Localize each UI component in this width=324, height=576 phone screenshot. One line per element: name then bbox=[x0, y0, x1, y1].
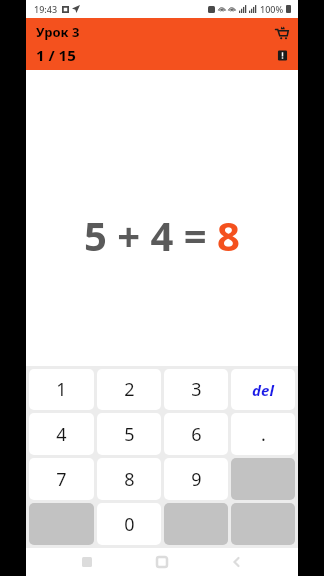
staticText: 8 bbox=[124, 467, 135, 492]
staticText: 4 bbox=[56, 422, 67, 447]
button[interactable]: Back bbox=[223, 548, 251, 576]
staticText: 1 bbox=[56, 377, 67, 402]
button[interactable]: del bbox=[231, 369, 295, 410]
button[interactable]: Info bbox=[272, 45, 292, 65]
button[interactable]: Shop bbox=[270, 21, 292, 43]
button[interactable] bbox=[231, 503, 295, 545]
staticText: del bbox=[252, 380, 274, 400]
button[interactable]: 0 bbox=[97, 503, 161, 545]
staticText: 0 bbox=[124, 512, 135, 537]
staticText: 7 bbox=[56, 467, 67, 492]
staticText: 9 bbox=[191, 467, 202, 492]
button[interactable]: 5 bbox=[97, 413, 161, 455]
button[interactable]: 9 bbox=[164, 458, 228, 500]
button[interactable]: Home bbox=[148, 548, 176, 576]
staticText: 5 + 4 = 8 bbox=[84, 208, 240, 262]
button[interactable] bbox=[164, 503, 228, 545]
button[interactable] bbox=[231, 458, 295, 500]
staticText: 2 bbox=[124, 377, 135, 402]
staticText: Урок 3 bbox=[36, 23, 80, 41]
button[interactable]: 1 bbox=[29, 369, 94, 410]
button[interactable]: . bbox=[231, 413, 295, 455]
staticText: 100% bbox=[260, 3, 284, 15]
staticText: 19:43 bbox=[34, 3, 58, 15]
button[interactable]: 6 bbox=[164, 413, 228, 455]
staticText: 6 bbox=[191, 422, 202, 447]
staticText: . bbox=[261, 422, 266, 447]
button[interactable] bbox=[29, 503, 94, 545]
button[interactable]: 7 bbox=[29, 458, 94, 500]
staticText: 1 / 15 bbox=[36, 45, 76, 65]
button[interactable]: Recents bbox=[73, 548, 101, 576]
button[interactable]: 3 bbox=[164, 369, 228, 410]
button[interactable]: 2 bbox=[97, 369, 161, 410]
button[interactable]: 8 bbox=[97, 458, 161, 500]
button[interactable]: 4 bbox=[29, 413, 94, 455]
staticText: 5 bbox=[124, 422, 135, 447]
staticText: 3 bbox=[191, 377, 202, 402]
